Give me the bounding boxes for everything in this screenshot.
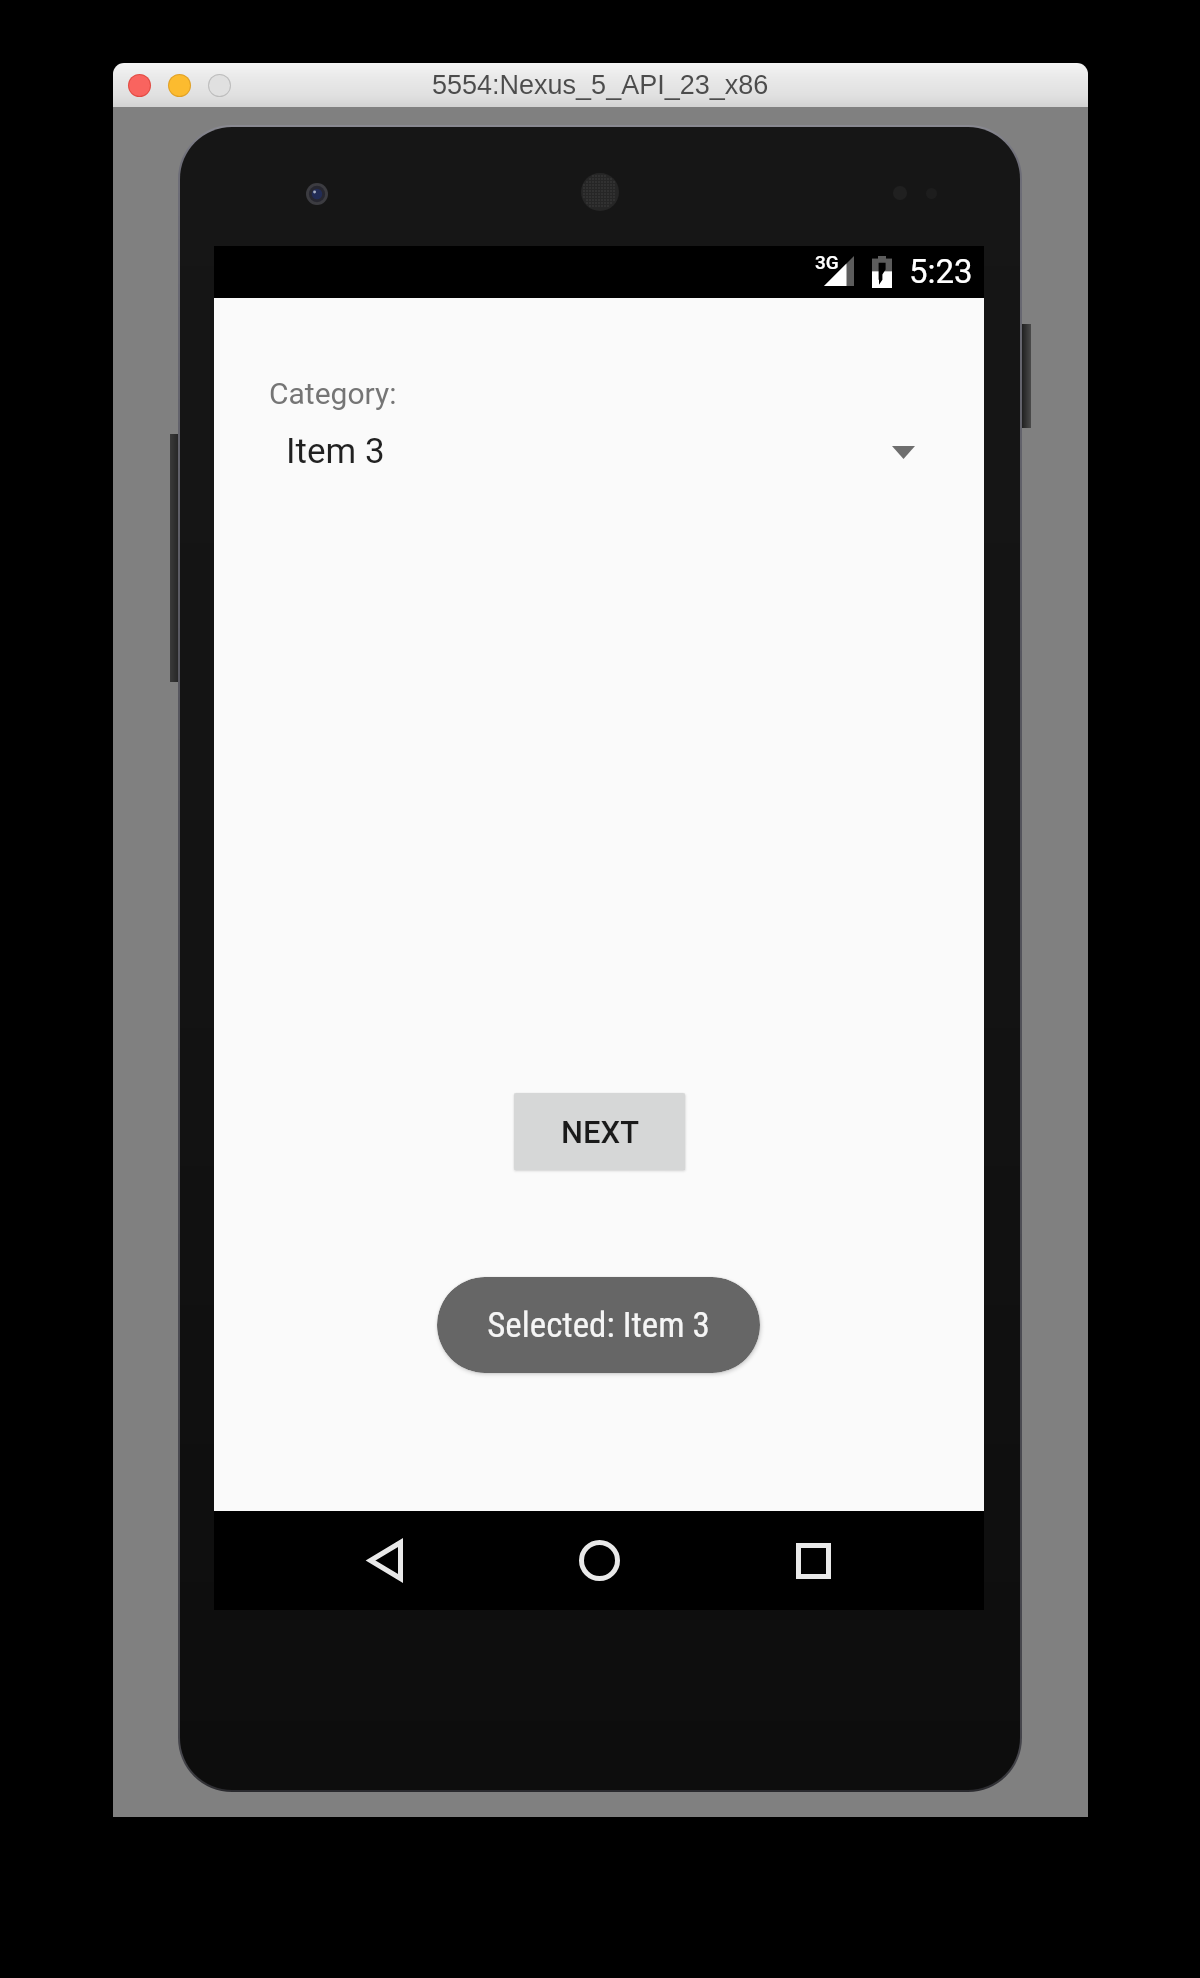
button[interactable]: Recent apps: [732, 1511, 894, 1610]
button[interactable]: Back: [304, 1511, 466, 1610]
button[interactable]: Home: [518, 1511, 680, 1610]
button[interactable]: Item 3: [214, 420, 984, 492]
button[interactable]: NEXT: [514, 1093, 685, 1170]
staticText: 5554:Nexus_5_API_23_x86: [432, 70, 769, 100]
staticText: 5:23: [909, 252, 973, 291]
staticText: Item 3: [286, 431, 385, 472]
staticText: Category:: [269, 376, 397, 411]
staticText: 3G: [815, 251, 839, 273]
staticText: NEXT: [561, 1114, 639, 1150]
staticText: Selected: Item 3: [487, 1305, 710, 1346]
